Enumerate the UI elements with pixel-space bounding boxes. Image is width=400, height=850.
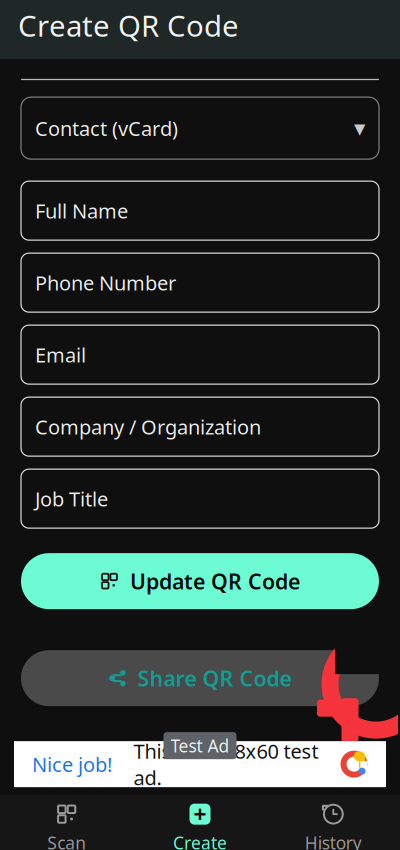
button[interactable]: Email — [21, 325, 379, 384]
staticText: Share QR Code — [137, 664, 291, 692]
staticText: ▾ — [354, 115, 365, 141]
button[interactable]: Share QR Code — [21, 650, 379, 706]
button[interactable]: Contact (vCard) — [21, 97, 379, 159]
button[interactable]: Job Title — [21, 469, 379, 528]
staticText: + — [193, 799, 206, 829]
staticText: Create — [173, 831, 227, 850]
button[interactable]: Phone Number — [21, 253, 379, 312]
button[interactable]: History — [267, 794, 400, 850]
button[interactable]: Update QR Code — [21, 553, 379, 609]
staticText: Company / Organization — [35, 413, 261, 440]
staticText: Nice job! — [32, 751, 112, 777]
staticText: Email — [35, 341, 86, 368]
staticText: Job Title — [35, 485, 108, 512]
button[interactable]: + — [133, 794, 267, 850]
staticText: Create QR Code — [18, 6, 239, 45]
staticText: Contact (vCard) — [35, 115, 178, 141]
button[interactable]: Company / Organization — [21, 397, 379, 456]
staticText: Scan — [47, 831, 86, 850]
staticText: Update QR Code — [130, 567, 300, 595]
staticText: Test Ad — [170, 734, 229, 757]
staticText: This is a 468x60 test ad. — [133, 738, 318, 791]
staticText: History — [305, 831, 362, 850]
button[interactable]: Scan — [0, 794, 133, 850]
button[interactable]: Full Name — [21, 181, 379, 240]
staticText: Phone Number — [35, 269, 176, 296]
staticText: Full Name — [35, 197, 128, 224]
